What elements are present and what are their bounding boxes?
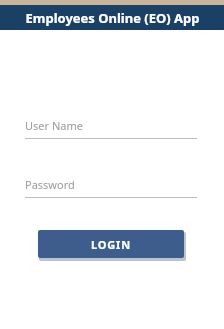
staticText: Employees Online (EO) App bbox=[25, 9, 200, 27]
staticText: Password bbox=[25, 177, 75, 192]
button[interactable]: Password bbox=[25, 177, 197, 198]
button[interactable]: LOGIN bbox=[38, 230, 184, 258]
staticText: LOGIN bbox=[91, 237, 131, 252]
button[interactable]: User Name bbox=[25, 118, 197, 139]
staticText: User Name bbox=[25, 118, 83, 133]
